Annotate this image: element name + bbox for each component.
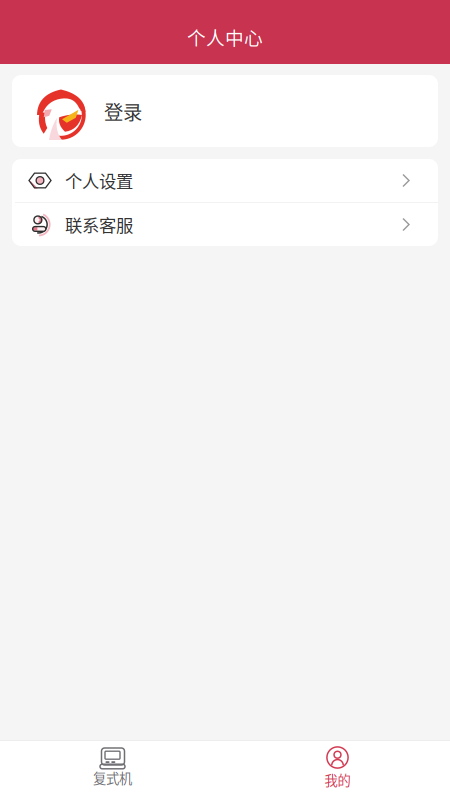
button[interactable]: 联系客服 [12, 203, 438, 246]
staticText: 联系客服 [65, 212, 133, 237]
button[interactable]: 复式机 [0, 740, 225, 800]
staticText: 个人设置 [65, 168, 133, 193]
staticText: 个人中心 [187, 23, 263, 50]
staticText: 登录 [104, 97, 142, 125]
button[interactable]: 登录 [12, 75, 438, 147]
button[interactable]: 个人设置 [12, 159, 438, 202]
button[interactable]: 我的 [225, 740, 450, 800]
staticText: 我的 [324, 770, 350, 789]
staticText: 复式机 [93, 768, 132, 787]
